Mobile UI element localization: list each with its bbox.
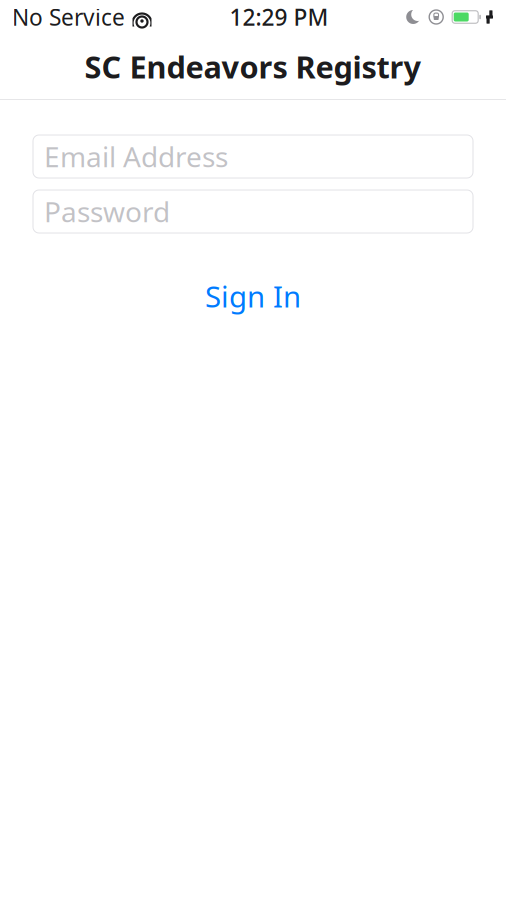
staticText: No Service — [12, 2, 125, 32]
staticText: 12:29 PM — [230, 2, 329, 32]
button[interactable]: Email Address — [33, 135, 473, 178]
staticText: Sign In — [205, 276, 301, 315]
button[interactable]: Sign In — [33, 279, 473, 313]
staticText: Email Address — [44, 138, 228, 175]
staticText: SC Endeavors Registry — [84, 46, 421, 87]
staticText: Password — [44, 193, 170, 230]
button[interactable]: Password — [33, 190, 473, 233]
